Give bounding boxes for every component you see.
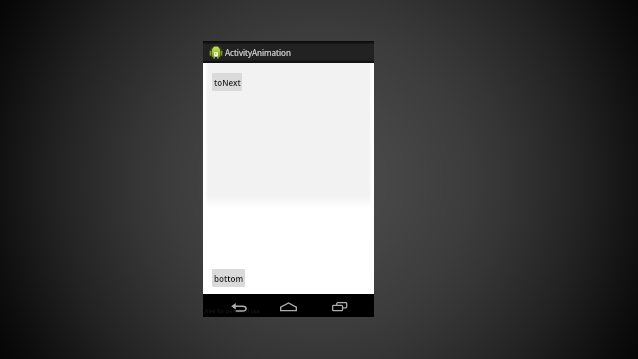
button[interactable]: Back <box>223 295 254 318</box>
button[interactable]: toNext <box>212 73 242 91</box>
staticText: bottom <box>214 273 244 284</box>
button[interactable]: Recent apps <box>324 295 355 318</box>
button[interactable]: Home <box>273 295 304 318</box>
staticText: free for personal use <box>205 307 260 315</box>
staticText: ActivityAnimation <box>225 47 291 58</box>
staticText: toNext <box>214 77 241 88</box>
button[interactable]: bottom <box>212 269 245 287</box>
